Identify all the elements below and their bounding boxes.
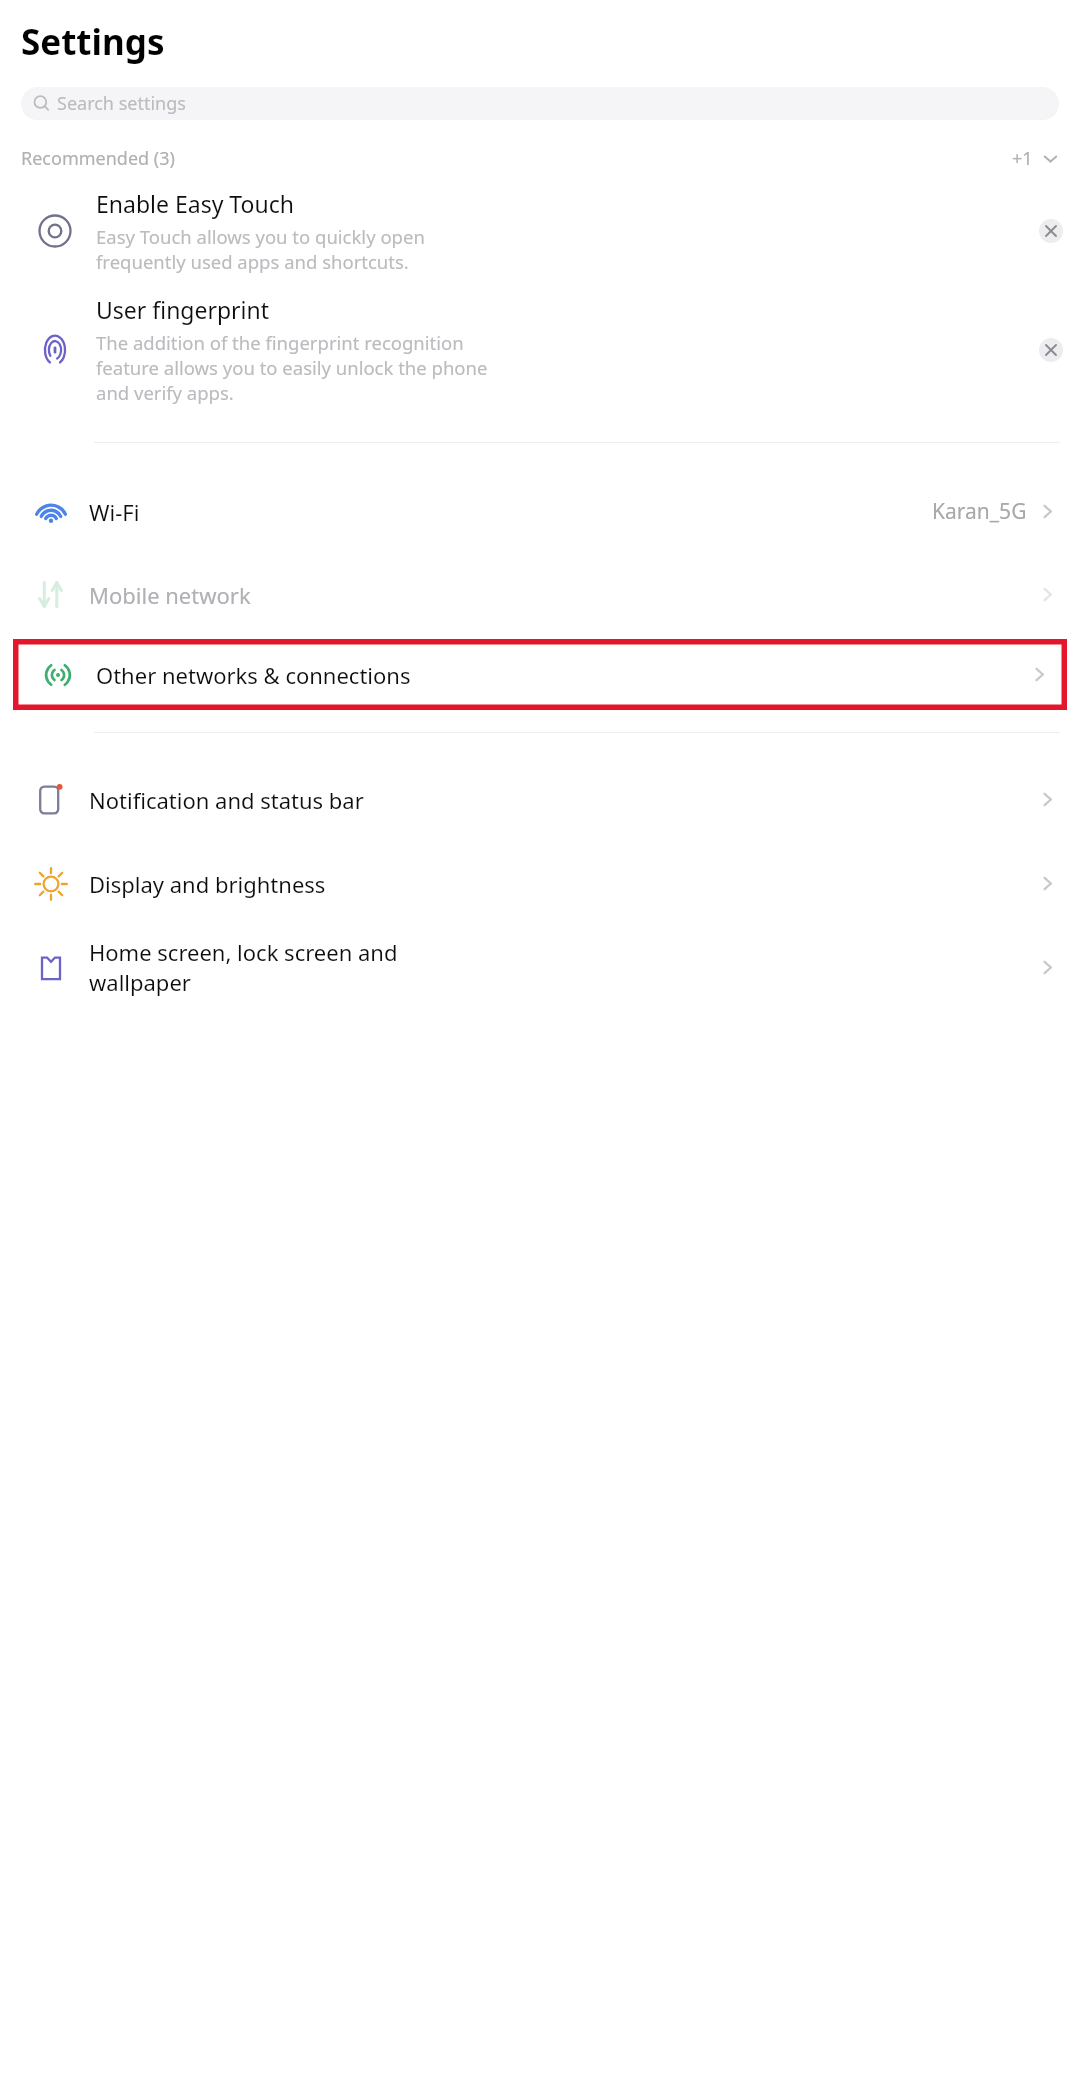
button[interactable]: User fingerprint — [13, 294, 1063, 405]
staticText: User fingerprint — [96, 294, 270, 325]
button[interactable]: Dismiss Enable Easy Touch — [1039, 219, 1063, 243]
staticText: Settings — [21, 18, 165, 66]
staticText: Notification and status bar — [89, 785, 364, 815]
button[interactable]: Dismiss User fingerprint — [1039, 338, 1063, 362]
staticText: Display and brightness — [89, 869, 326, 899]
staticText: Other networks & connections — [96, 660, 411, 690]
staticText: +1 — [1012, 146, 1033, 171]
button[interactable]: Mobile network — [13, 559, 1058, 630]
staticText: Easy Touch allows you to quickly open fr… — [96, 224, 425, 274]
button[interactable]: Recommended (3) — [21, 146, 1059, 171]
button[interactable]: Wi-Fi — [13, 476, 1058, 547]
other: Other networks and connections — [40, 657, 76, 693]
staticText: Enable Easy Touch — [96, 188, 294, 219]
staticText: Search settings — [57, 91, 186, 116]
button[interactable]: Home screen, lock screen and wallpaper — [13, 932, 1058, 1003]
button[interactable]: Other networks and connections — [20, 639, 1050, 710]
button[interactable]: Display and brightness — [13, 848, 1058, 919]
staticText: Wi-Fi — [89, 497, 140, 527]
staticText: Mobile network — [89, 580, 251, 610]
staticText: The addition of the fingerprint recognit… — [96, 330, 488, 405]
button[interactable]: Notification and status bar — [13, 764, 1058, 835]
button[interactable]: Enable Easy Touch — [13, 188, 1063, 274]
button[interactable]: Search settings — [21, 87, 1059, 120]
staticText: Karan_5G — [932, 497, 1027, 526]
staticText: Home screen, lock screen and wallpaper — [89, 937, 398, 998]
staticText: Recommended (3) — [21, 146, 175, 171]
